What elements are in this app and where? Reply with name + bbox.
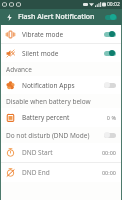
staticText: Silent mode — [22, 49, 59, 58]
button[interactable]: Silent mode — [1, 44, 121, 62]
staticText: Flash Alert Notification — [18, 12, 95, 22]
button[interactable]: Toggle — [103, 82, 116, 88]
staticText: DND End — [22, 168, 50, 177]
staticText: 0 % — [106, 114, 116, 121]
button[interactable]: Notification Apps — [1, 76, 121, 94]
staticText: Notification Apps — [22, 81, 75, 90]
staticText: Do not disturb (DND Mode) — [6, 131, 90, 140]
staticText: Battery percent — [22, 113, 70, 122]
button[interactable]: Toggle — [103, 50, 116, 56]
staticText: 00:02 — [107, 1, 120, 8]
staticText: DND Start — [22, 148, 53, 157]
button[interactable]: Do not disturb (DND Mode) — [1, 127, 121, 143]
button[interactable]: Master toggle — [103, 13, 118, 21]
staticText: 00:00 — [101, 149, 116, 156]
button[interactable]: Toggle — [103, 132, 116, 138]
button[interactable]: Toggle — [103, 31, 116, 37]
button[interactable]: DND End — [1, 163, 121, 182]
staticText: Advance — [6, 65, 32, 74]
button[interactable]: Flash alert — [4, 12, 14, 22]
button[interactable]: DND Start — [1, 143, 121, 162]
button[interactable]: Battery percent — [1, 108, 121, 127]
button[interactable]: Vibrate mode — [1, 25, 121, 43]
staticText: Disable when battery below — [6, 97, 91, 106]
button[interactable]: Toggle — [104, 14, 117, 20]
staticText: 00:00 — [101, 169, 116, 176]
staticText: Vibrate mode — [22, 30, 64, 39]
